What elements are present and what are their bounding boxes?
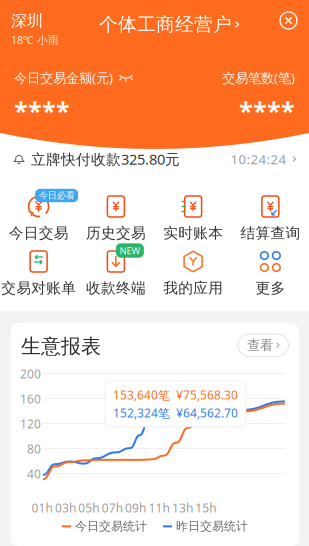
staticText: 09h [125,500,146,516]
staticText: 200 [20,366,41,382]
staticText: 10:24:24 [230,150,286,168]
staticText: 120 [20,416,41,432]
staticText: 实时账本 [163,224,223,242]
staticText: 收款终端 [86,279,146,297]
staticText: 15h [195,500,216,516]
staticText: 今日必看 [39,190,75,201]
staticText: 13h [172,500,193,516]
staticText: 40 [27,466,41,482]
button[interactable]: 历史交易 [77,194,154,242]
button[interactable]: 个体工商经营户 [99,11,239,34]
staticText: 80 [27,441,41,457]
button[interactable]: 交易对账单 [0,249,77,297]
staticText: 153,640笔 [113,387,170,403]
button[interactable]: Close [279,11,298,30]
staticText: 更多 [255,279,285,297]
staticText: 交易笔数(笔) [222,69,295,86]
staticText: 立牌快付收款325.80元 [31,149,180,169]
button[interactable]: 今日必看 [0,194,77,242]
staticText: 深圳 [11,11,43,31]
staticText: 今日交易金额(元) [14,69,113,86]
staticText: 生意报表 [21,334,101,359]
staticText: 05h [78,500,99,516]
staticText: 我的应用 [163,279,223,297]
staticText: NEW [119,244,140,257]
staticText: 152,324笔 [113,405,170,421]
button[interactable]: 立牌快付收款325.80元 [0,149,309,169]
staticText: 11h [148,500,169,516]
button[interactable]: 我的应用 [154,249,232,297]
staticText: 交易对账单 [1,279,76,297]
button[interactable]: 结算查询 [232,194,309,242]
staticText: 18℃ 小雨 [11,33,59,47]
staticText: 个体工商经营户 [99,13,232,36]
staticText: 历史交易 [86,224,146,242]
button[interactable]: Show amount [119,73,133,83]
staticText: 昨日交易统计 [176,519,248,534]
staticText: 01h [31,500,52,516]
button[interactable]: 更多 [232,249,309,297]
staticText: **** [239,93,295,127]
staticText: ¥75,568.30 [176,387,238,403]
button[interactable]: 查看 [238,334,288,356]
button[interactable]: NEW [77,249,154,297]
staticText: 今日交易 [9,224,69,242]
button[interactable]: 深圳 [11,11,59,47]
staticText: 03h [55,500,76,516]
staticText: ¥64,562.70 [176,405,238,421]
staticText: 07h [102,500,123,516]
staticText: 今日交易统计 [75,519,147,534]
staticText: 查看 [247,337,273,353]
staticText: 结算查询 [240,224,300,242]
staticText: 160 [20,391,41,407]
button[interactable]: 实时账本 [154,194,232,242]
staticText: **** [14,93,70,127]
